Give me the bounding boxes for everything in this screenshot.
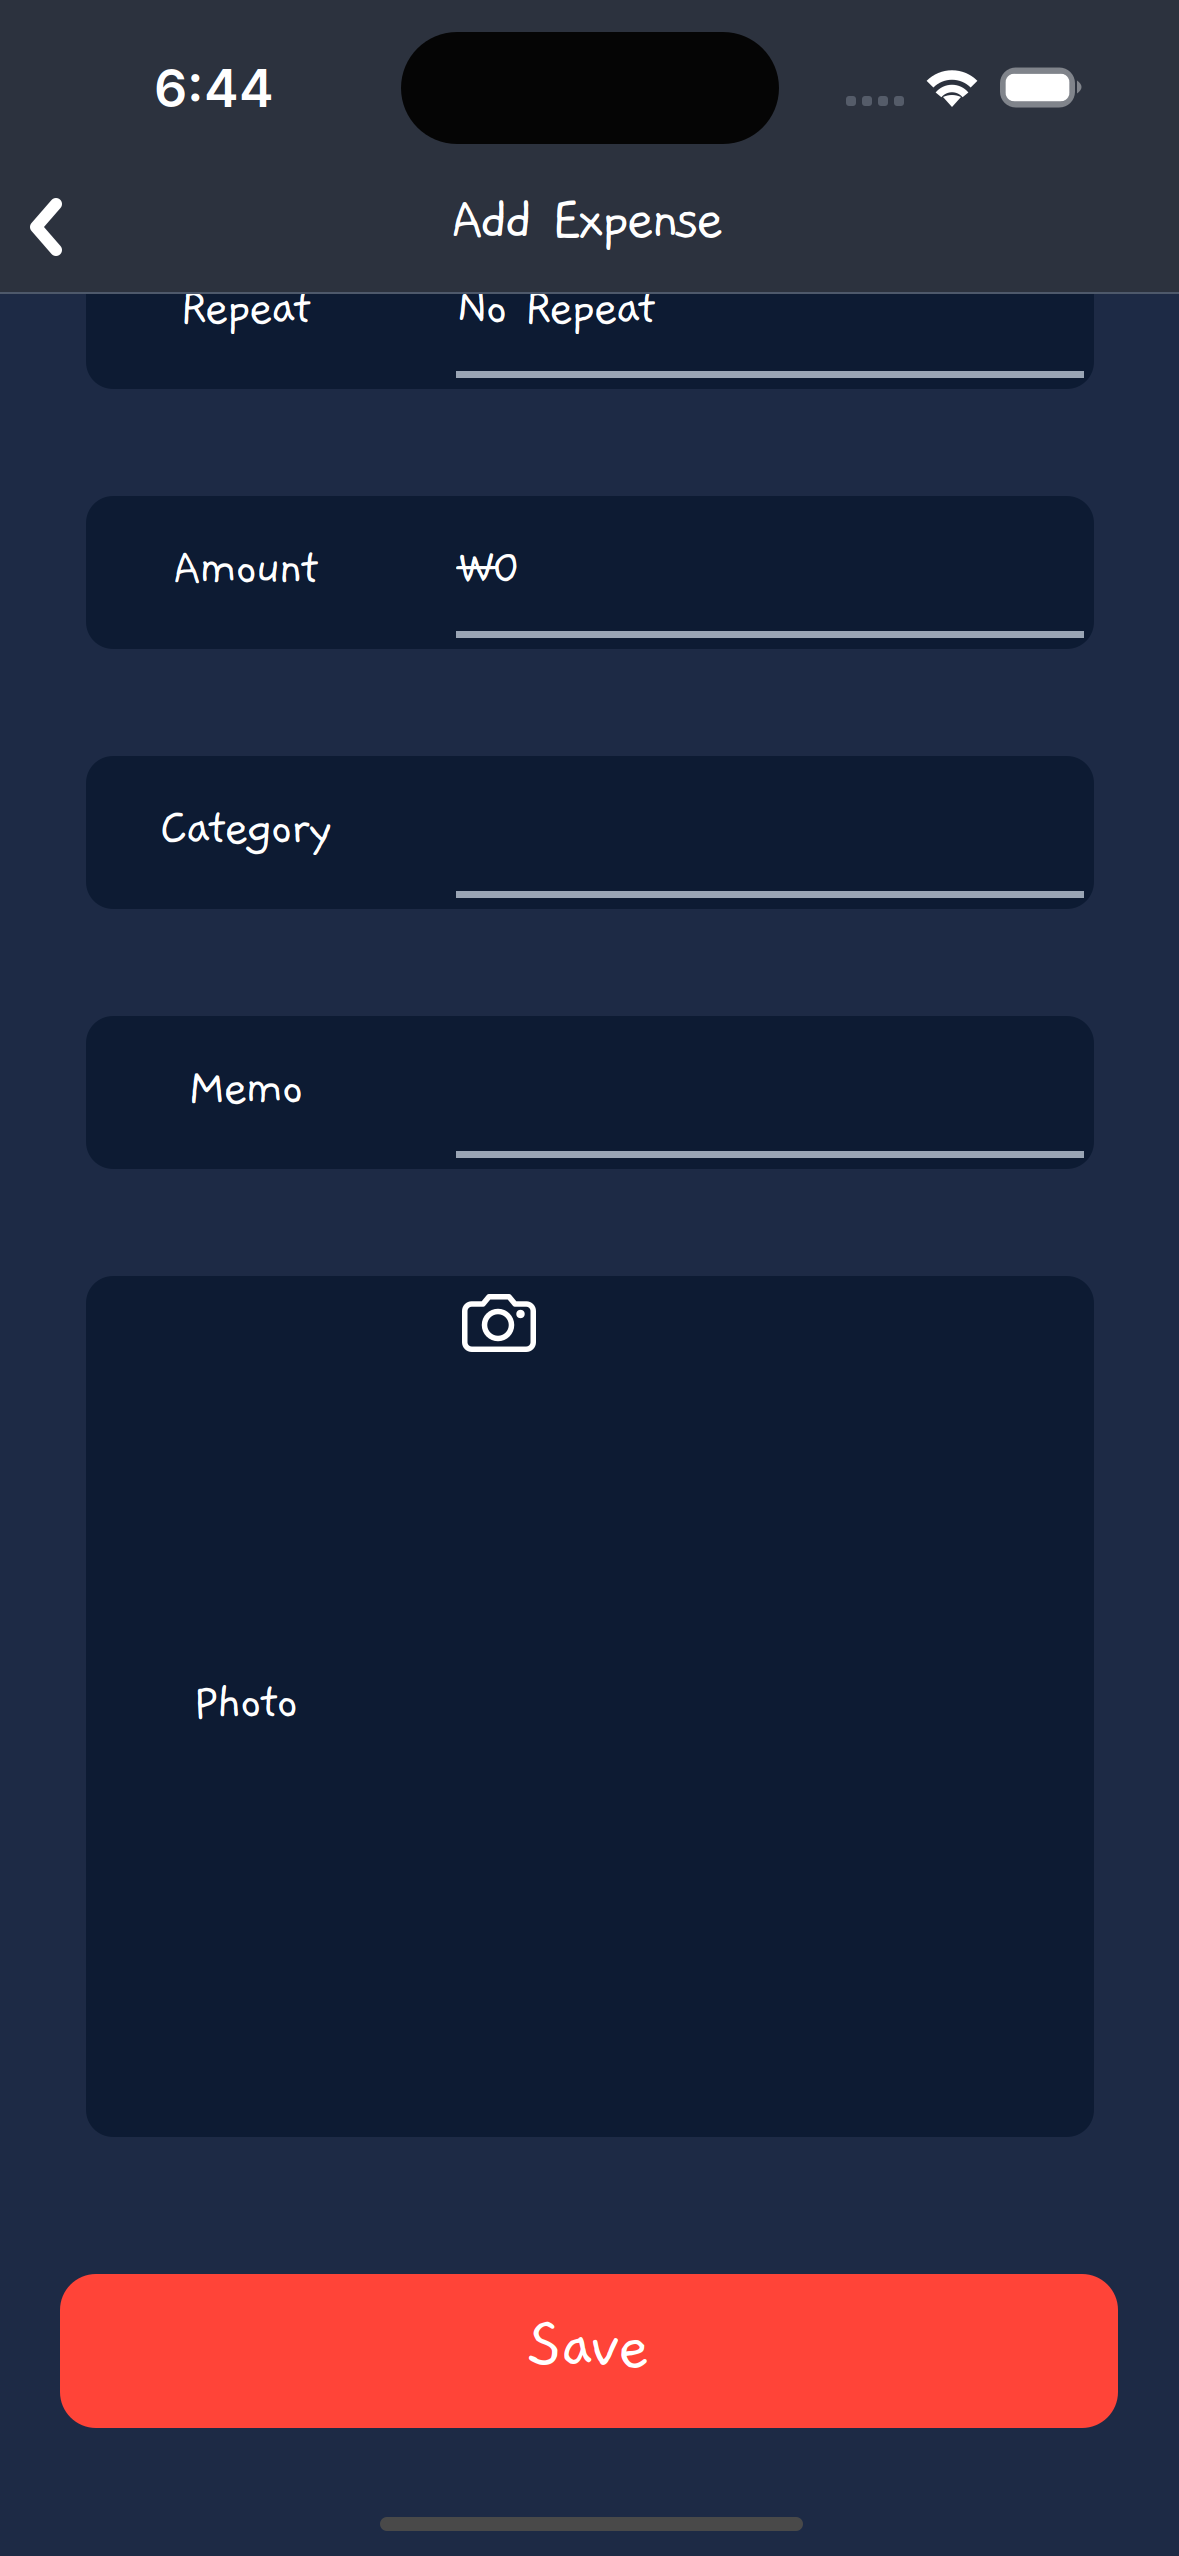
button[interactable]: Photo: [86, 1276, 1094, 2137]
button[interactable]: Repeat: [86, 236, 1094, 389]
staticText: Category: [159, 802, 333, 855]
staticText: Memo: [188, 1062, 304, 1115]
staticText: Add Expense: [450, 189, 724, 251]
staticText: Repeat: [180, 282, 312, 335]
staticText: Amount: [172, 542, 319, 595]
button[interactable]: Back: [0, 172, 92, 282]
button[interactable]: Memo: [86, 1016, 1094, 1169]
staticText: Photo: [193, 1676, 299, 1729]
button[interactable]: Category: [86, 756, 1094, 909]
staticText: ₩0: [456, 542, 522, 595]
staticText: 6:44: [154, 56, 274, 119]
staticText: No Repeat: [456, 282, 657, 335]
staticText: Save: [527, 2312, 650, 2382]
button[interactable]: Save: [60, 2274, 1118, 2428]
button[interactable]: Amount: [86, 496, 1094, 649]
